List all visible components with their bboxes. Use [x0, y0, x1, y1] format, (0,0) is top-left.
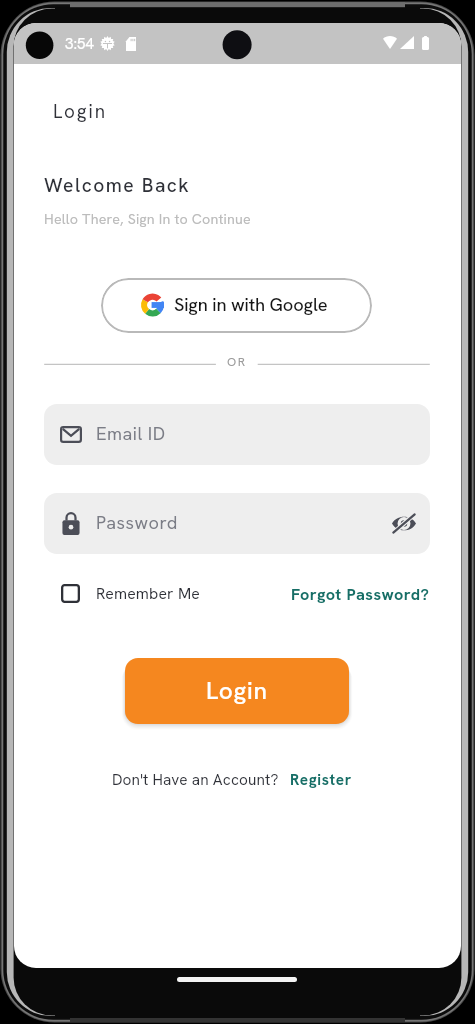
other: Settings: [100, 36, 115, 51]
staticText: Don't Have an Account?: [112, 770, 279, 790]
button[interactable]: Forgot Password?: [291, 584, 430, 605]
staticText: Welcome Back: [44, 173, 191, 198]
staticText: Hello There, Sign In to Continue: [44, 210, 251, 229]
button[interactable]: Show password: [389, 508, 419, 538]
staticText: Remember Me: [96, 583, 200, 604]
other: Home: [177, 977, 297, 982]
staticText: 3:54: [65, 34, 94, 54]
button[interactable]: Email ID: [44, 404, 430, 465]
staticText: Sign in with Google: [174, 293, 328, 317]
button[interactable]: Password: [44, 493, 430, 554]
staticText: Email ID: [96, 422, 166, 446]
button[interactable]: Sign in with Google: [101, 278, 372, 333]
staticText: Password: [96, 511, 178, 535]
staticText: Login: [206, 675, 268, 707]
staticText: Login: [53, 99, 107, 124]
button[interactable]: Login: [125, 658, 349, 724]
button[interactable]: Register: [290, 770, 352, 790]
button[interactable]: Remember Me: [61, 583, 200, 604]
staticText: OR: [227, 354, 247, 370]
